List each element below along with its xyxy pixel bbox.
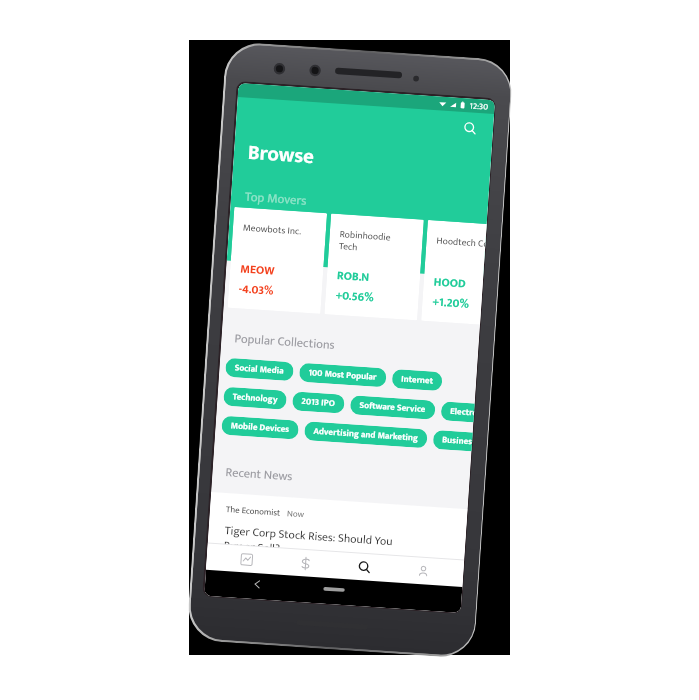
button[interactable]: Browse xyxy=(334,551,394,582)
staticText: Electronics xyxy=(450,404,475,420)
staticText: ROB.N xyxy=(336,266,371,288)
button[interactable]: Electronics xyxy=(440,401,475,422)
button[interactable]: Hoodtech Corp xyxy=(421,220,487,325)
staticText: Browse xyxy=(247,136,316,174)
staticText: Robinhoodie Tech xyxy=(338,226,403,258)
staticText: Now xyxy=(286,506,305,522)
button[interactable]: Advertising and Marketing xyxy=(304,421,428,448)
staticText: 12:30 xyxy=(469,98,489,114)
button[interactable]: Search xyxy=(457,116,483,141)
staticText: +0.56% xyxy=(335,286,375,308)
button[interactable]: Meowbots Inc. xyxy=(228,207,327,314)
staticText: Tiger Corp Stock Rises: Should You Buy o… xyxy=(223,521,408,567)
staticText: Internet xyxy=(401,371,434,389)
staticText: Meowbots Inc. xyxy=(242,220,306,240)
staticText: The Economist xyxy=(225,502,281,521)
staticText: HOOD xyxy=(433,272,466,295)
button[interactable]: Software Service xyxy=(350,395,436,420)
button[interactable]: Portfolio xyxy=(217,544,277,574)
staticText: -4.03% xyxy=(238,279,274,302)
button[interactable]: Internet xyxy=(392,369,443,391)
staticText: 100 Most Popular xyxy=(308,365,378,385)
button[interactable]: 100 Most Popular xyxy=(299,363,387,387)
button[interactable]: Social Media xyxy=(225,358,294,381)
button[interactable]: Business xyxy=(433,430,473,451)
button[interactable]: Cash xyxy=(275,547,335,578)
staticText: Social Media xyxy=(234,360,285,379)
staticText: Advertising and Marketing xyxy=(313,424,419,446)
staticText: 2013 IPO xyxy=(301,394,336,411)
staticText: Technology xyxy=(232,389,278,407)
staticText: Software Service xyxy=(359,398,427,417)
button[interactable]: The Economist xyxy=(206,492,468,590)
staticText: Mobile Devices xyxy=(230,418,290,437)
staticText: Hoodtech Corp xyxy=(436,233,486,252)
staticText: Recent News xyxy=(225,462,293,487)
staticText: Top Movers xyxy=(244,186,308,211)
button[interactable]: Account xyxy=(392,555,453,586)
button[interactable]: 2013 IPO xyxy=(292,391,345,414)
staticText: Business xyxy=(442,432,473,449)
button[interactable]: Mobile Devices xyxy=(221,416,299,440)
button[interactable]: Robinhoodie Tech xyxy=(324,213,424,320)
staticText: MEOW xyxy=(239,259,276,282)
staticText: +1.20% xyxy=(432,292,470,315)
button[interactable]: Technology xyxy=(223,387,287,410)
staticText: Popular Collections xyxy=(234,328,336,356)
